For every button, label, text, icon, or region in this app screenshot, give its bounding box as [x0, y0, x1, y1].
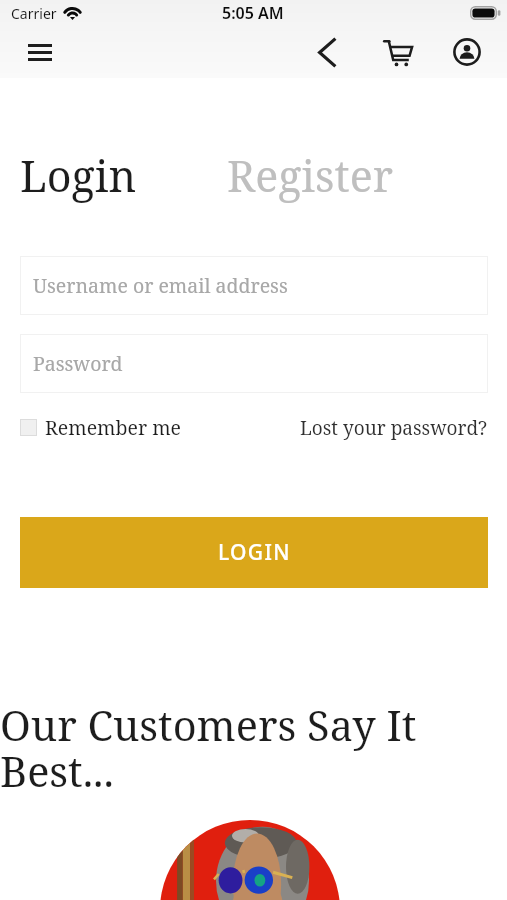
- button[interactable]: Remember me: [20, 414, 182, 441]
- staticText: Our Customers Say It Best...: [0, 697, 450, 799]
- staticText: Password: [33, 350, 123, 377]
- button[interactable]: Lost your password?: [300, 415, 488, 441]
- button[interactable]: Username or email address: [20, 256, 488, 315]
- staticText: Carrier: [11, 4, 57, 23]
- button[interactable]: Password: [20, 334, 488, 393]
- staticText: Register: [227, 146, 393, 205]
- button[interactable]: Login: [20, 146, 137, 205]
- staticText: Username or email address: [33, 272, 288, 299]
- button[interactable]: Account: [441, 26, 493, 78]
- staticText: 5:05 AM: [222, 2, 284, 24]
- staticText: Remember me: [45, 414, 182, 441]
- button[interactable]: Back: [301, 26, 353, 78]
- staticText: Lost your password?: [300, 415, 488, 441]
- button[interactable]: Menu: [14, 26, 66, 78]
- staticText: Login: [20, 146, 137, 205]
- staticText: LOGIN: [218, 538, 291, 567]
- button[interactable]: Register: [227, 146, 393, 205]
- button[interactable]: LOGIN: [20, 517, 488, 588]
- button[interactable]: Cart: [372, 26, 424, 78]
